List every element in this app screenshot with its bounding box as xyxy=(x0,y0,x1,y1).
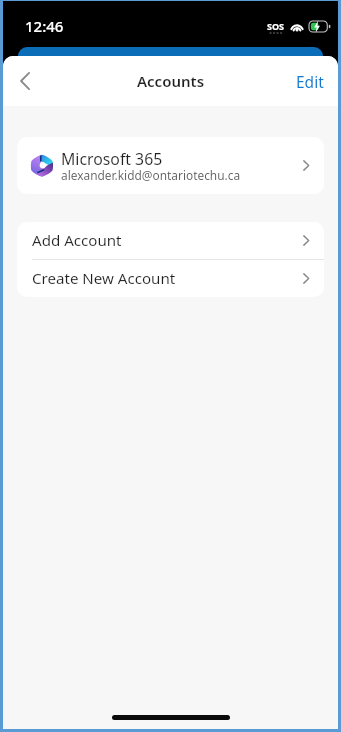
staticText: Create New Account xyxy=(32,268,303,289)
staticText: alexander.kidd@ontariotechu.ca xyxy=(61,167,241,183)
staticText: SOS xyxy=(267,20,285,32)
button[interactable]: Microsoft 365 xyxy=(17,137,324,194)
staticText: Accounts xyxy=(137,71,205,91)
button[interactable]: Back xyxy=(5,61,45,101)
button[interactable]: Create New Account xyxy=(17,260,324,297)
staticText: Microsoft 365 xyxy=(61,148,163,170)
button[interactable]: Add Account xyxy=(17,222,324,259)
staticText: Edit xyxy=(296,71,324,92)
staticText: Add Account xyxy=(32,230,303,251)
staticText: 12:46 xyxy=(25,16,64,36)
button[interactable]: Edit xyxy=(282,59,338,104)
